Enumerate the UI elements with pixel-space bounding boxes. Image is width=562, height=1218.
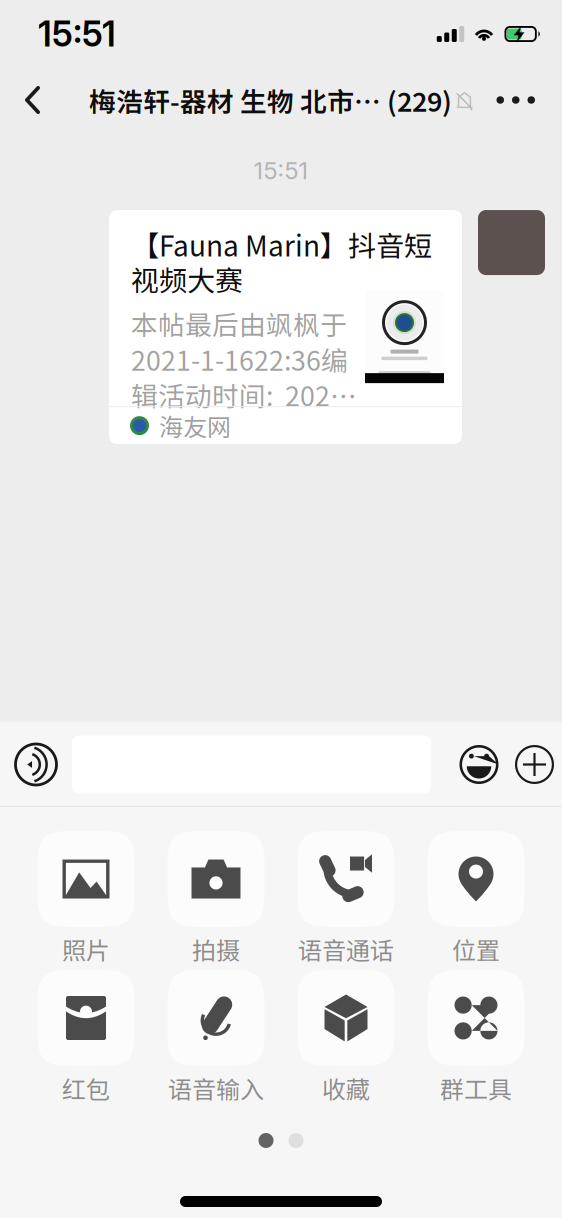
staticText: 15:51 (38, 13, 116, 55)
staticText: 收藏 (322, 1071, 370, 1105)
staticText: 群工具 (440, 1071, 512, 1105)
button[interactable]: 红包 (37, 970, 134, 1101)
button[interactable]: Back (0, 68, 62, 132)
button[interactable]: 照片 (37, 831, 134, 962)
staticText: 梅浩轩-器材 生物 北市… (229) (89, 81, 452, 119)
button[interactable]: 语音通话 (297, 831, 394, 962)
staticText: 照片 (62, 932, 110, 966)
button[interactable]: Emoji (451, 722, 507, 807)
staticText: 语音通话 (298, 932, 394, 966)
button[interactable]: 拍摄 (167, 831, 264, 962)
staticText: 红包 (62, 1071, 110, 1105)
staticText: 【Fauna Marin】抖音短视频大赛 (131, 224, 432, 299)
button[interactable]: 收藏 (297, 970, 394, 1101)
button[interactable]: 群工具 (427, 970, 524, 1101)
button[interactable]: Voice message (0, 722, 72, 807)
button[interactable]: 语音输入 (167, 970, 264, 1101)
button[interactable]: 位置 (427, 831, 524, 962)
staticText: 15:51 (253, 156, 308, 185)
staticText: 本帖最后由飒枫于 2021-1-1622:36编 辑活动时间: 202… (131, 304, 357, 414)
button[interactable]: More (472, 68, 562, 132)
staticText: 语音输入 (168, 1071, 264, 1105)
button[interactable]: More actions (507, 722, 562, 807)
staticText: 拍摄 (192, 932, 240, 966)
staticText: 位置 (452, 932, 500, 966)
staticText: 海友网 (159, 408, 231, 443)
